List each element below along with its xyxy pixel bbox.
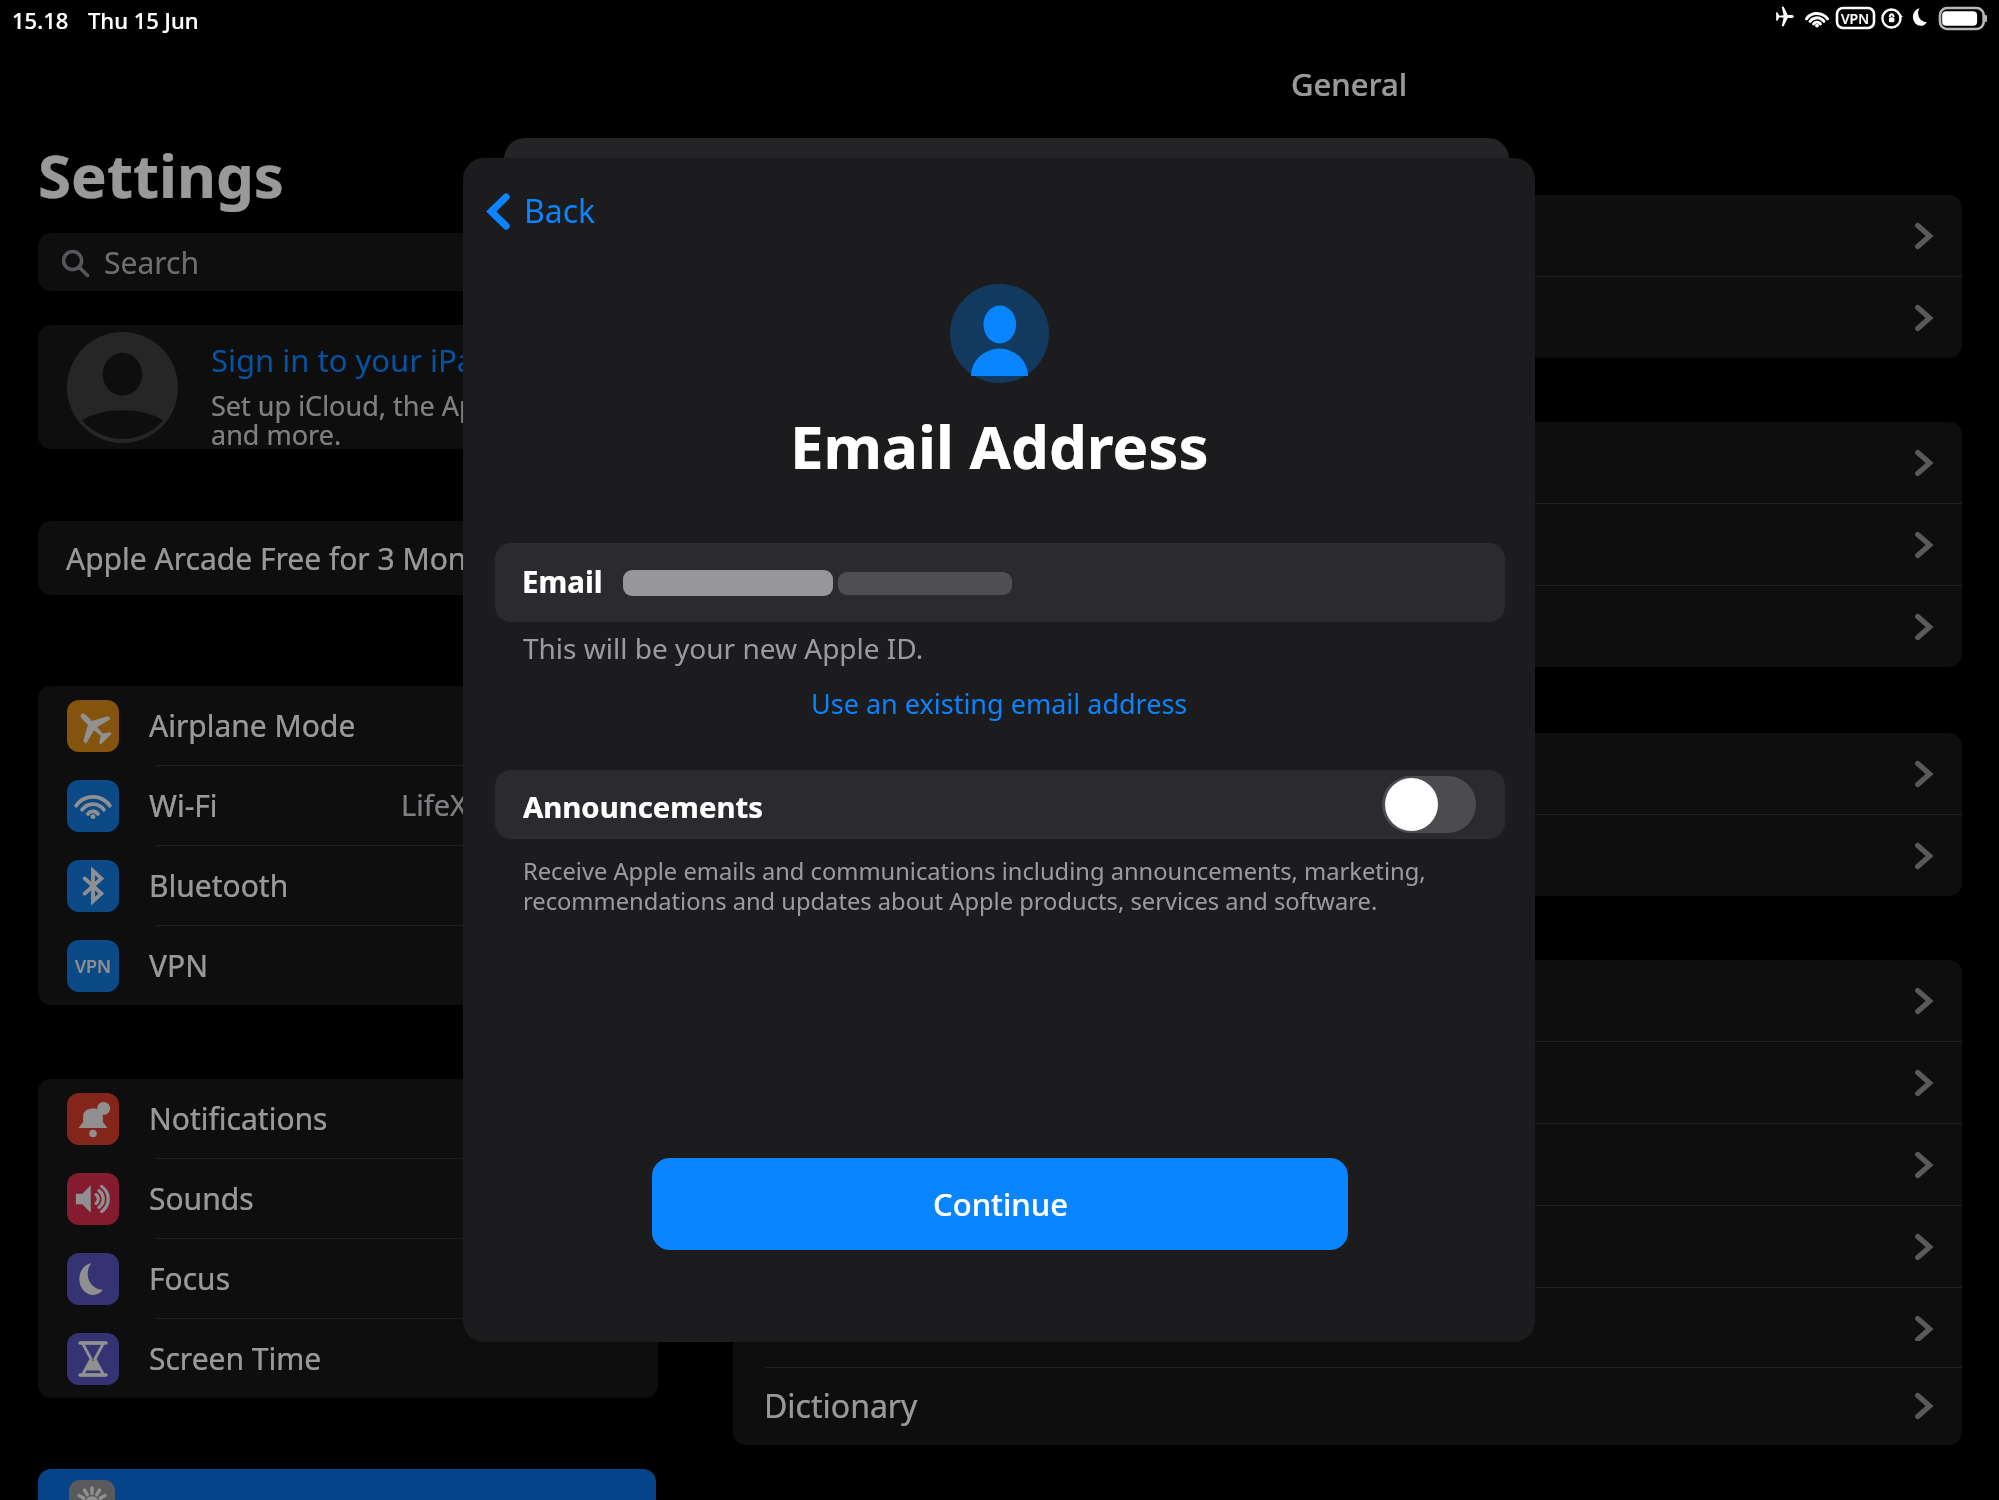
staticText: VPN	[149, 945, 208, 986]
button[interactable]: Settings item	[733, 277, 1962, 358]
staticText: Dictionary	[764, 1384, 918, 1428]
button[interactable]: Settings item	[733, 1124, 1962, 1205]
staticText: Notifications	[149, 1098, 328, 1139]
button[interactable]: Announcements toggle	[1382, 776, 1476, 833]
staticText: Bluetooth	[149, 865, 289, 906]
button[interactable]: General	[38, 1469, 656, 1500]
staticText: Search	[104, 242, 199, 283]
button[interactable]: Airplane Mode	[38, 686, 658, 765]
staticText: VPN	[75, 954, 112, 979]
button[interactable]: Back	[480, 179, 605, 243]
button[interactable]: Settings item	[733, 1206, 1962, 1287]
button[interactable]: Dictionary	[733, 1367, 1962, 1445]
staticText: Sign in to your iPad	[211, 339, 494, 381]
staticText: Receive Apple emails and communications …	[523, 855, 1426, 917]
button[interactable]: Email	[495, 543, 1505, 622]
button[interactable]: Settings item	[733, 733, 1962, 814]
button[interactable]: Apple Arcade Free for 3 Months	[38, 521, 658, 595]
staticText: Apple Arcade Free for 3 Months	[66, 538, 511, 579]
button[interactable]: VPN	[38, 926, 658, 1005]
staticText: Settings	[38, 134, 284, 216]
button[interactable]: Settings item	[733, 422, 1962, 503]
button[interactable]: Wi-Fi	[38, 766, 658, 845]
button[interactable]: Settings item	[733, 960, 1962, 1041]
staticText: Email Address	[790, 405, 1209, 487]
staticText: Airplane Mode	[149, 705, 356, 746]
button[interactable]: Search	[38, 233, 658, 291]
button[interactable]: Settings item	[733, 195, 1962, 276]
staticText: General	[1291, 63, 1408, 105]
button[interactable]: Screen Time	[38, 1319, 658, 1398]
button[interactable]: Use an existing email address	[799, 676, 1200, 731]
button[interactable]: Settings item	[733, 815, 1962, 896]
button[interactable]: Sign in to your iPad	[38, 325, 658, 449]
button[interactable]: Bluetooth	[38, 846, 658, 925]
staticText: Screen Time	[149, 1338, 322, 1379]
staticText: Continue	[933, 1183, 1068, 1225]
button[interactable]: Settings item	[733, 1042, 1962, 1123]
staticText: Email	[522, 561, 603, 601]
staticText: Sounds	[149, 1178, 254, 1219]
button[interactable]: Settings item	[733, 504, 1962, 585]
button[interactable]: Settings item	[733, 1288, 1962, 1369]
staticText: Use an existing email address	[811, 685, 1188, 722]
button[interactable]: Announcements	[495, 770, 1505, 839]
staticText: Announcements	[523, 787, 763, 827]
button[interactable]: Notifications	[38, 1079, 658, 1158]
staticText: Wi-Fi	[149, 785, 218, 826]
button[interactable]: Settings item	[733, 586, 1962, 667]
button[interactable]: Continue	[652, 1158, 1348, 1250]
staticText: Thu 15 Jun	[88, 5, 199, 35]
staticText: VPN	[1841, 9, 1870, 28]
staticText: This will be your new Apple ID.	[523, 629, 924, 667]
staticText: LifeX	[401, 785, 468, 824]
button[interactable]: Sounds	[38, 1159, 658, 1238]
staticText: Set up iCloud, the App Store and more.	[211, 387, 566, 449]
button[interactable]: Focus	[38, 1239, 658, 1318]
staticText: 15.18	[12, 5, 69, 35]
staticText: Focus	[149, 1258, 231, 1299]
staticText: Back	[524, 189, 596, 233]
